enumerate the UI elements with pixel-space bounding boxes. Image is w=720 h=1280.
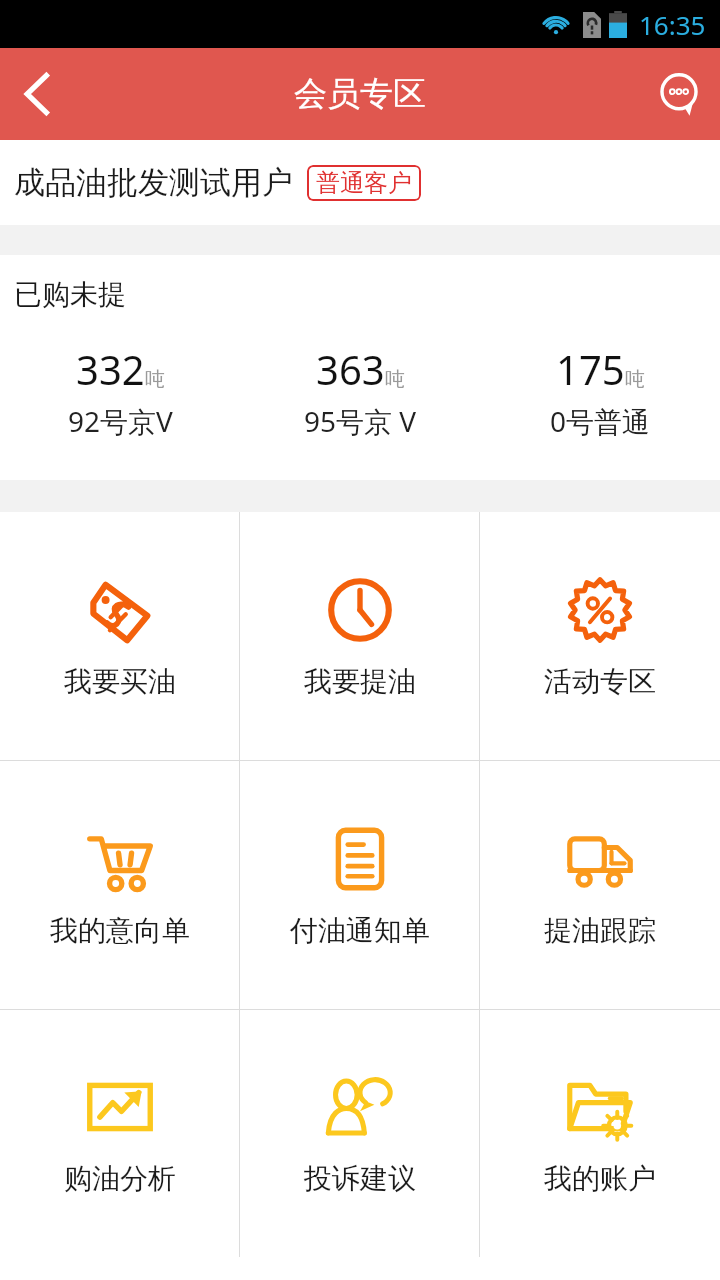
button[interactable]: 投诉建议 <box>240 1010 480 1257</box>
button[interactable]: Messages <box>638 48 720 140</box>
staticText: 16:35 <box>639 7 706 42</box>
button[interactable]: 我的账户 <box>480 1010 720 1257</box>
staticText: 我的意向单 <box>50 913 190 948</box>
button[interactable]: 363 <box>240 342 480 440</box>
staticText: 我的账户 <box>544 1161 656 1196</box>
staticText: 95号京 V <box>304 402 417 440</box>
staticText: 363 <box>316 342 385 396</box>
button[interactable]: 我要提油 <box>240 512 480 760</box>
staticText: 付油通知单 <box>290 913 430 948</box>
button[interactable]: 我要买油 <box>0 512 240 760</box>
staticText: 吨 <box>385 367 405 392</box>
button[interactable]: Back <box>0 48 74 140</box>
button[interactable]: 我的意向单 <box>0 761 240 1009</box>
staticText: 投诉建议 <box>304 1161 416 1196</box>
staticText: 我要买油 <box>64 664 176 699</box>
staticText: 已购未提 <box>14 277 126 312</box>
staticText: 332 <box>76 342 145 396</box>
staticText: 175 <box>556 342 625 396</box>
button[interactable]: 付油通知单 <box>240 761 480 1009</box>
staticText: 吨 <box>145 367 165 392</box>
staticText: 吨 <box>625 367 645 392</box>
button[interactable]: 活动专区 <box>480 512 720 760</box>
staticText: 92号京V <box>68 402 173 440</box>
staticText: 我要提油 <box>304 664 416 699</box>
button[interactable]: 175 <box>480 342 720 440</box>
staticText: 0号普通 <box>550 402 651 440</box>
staticText: 购油分析 <box>64 1161 176 1196</box>
staticText: 会员专区 <box>294 73 426 115</box>
button[interactable]: 332 <box>0 342 240 440</box>
staticText: 活动专区 <box>544 664 656 699</box>
button[interactable]: 成品油批发测试用户 <box>0 140 720 225</box>
button[interactable]: 提油跟踪 <box>480 761 720 1009</box>
button[interactable]: 购油分析 <box>0 1010 240 1257</box>
staticText: 成品油批发测试用户 <box>14 163 293 202</box>
staticText: 提油跟踪 <box>544 913 656 948</box>
staticText: 普通客户 <box>316 168 412 198</box>
